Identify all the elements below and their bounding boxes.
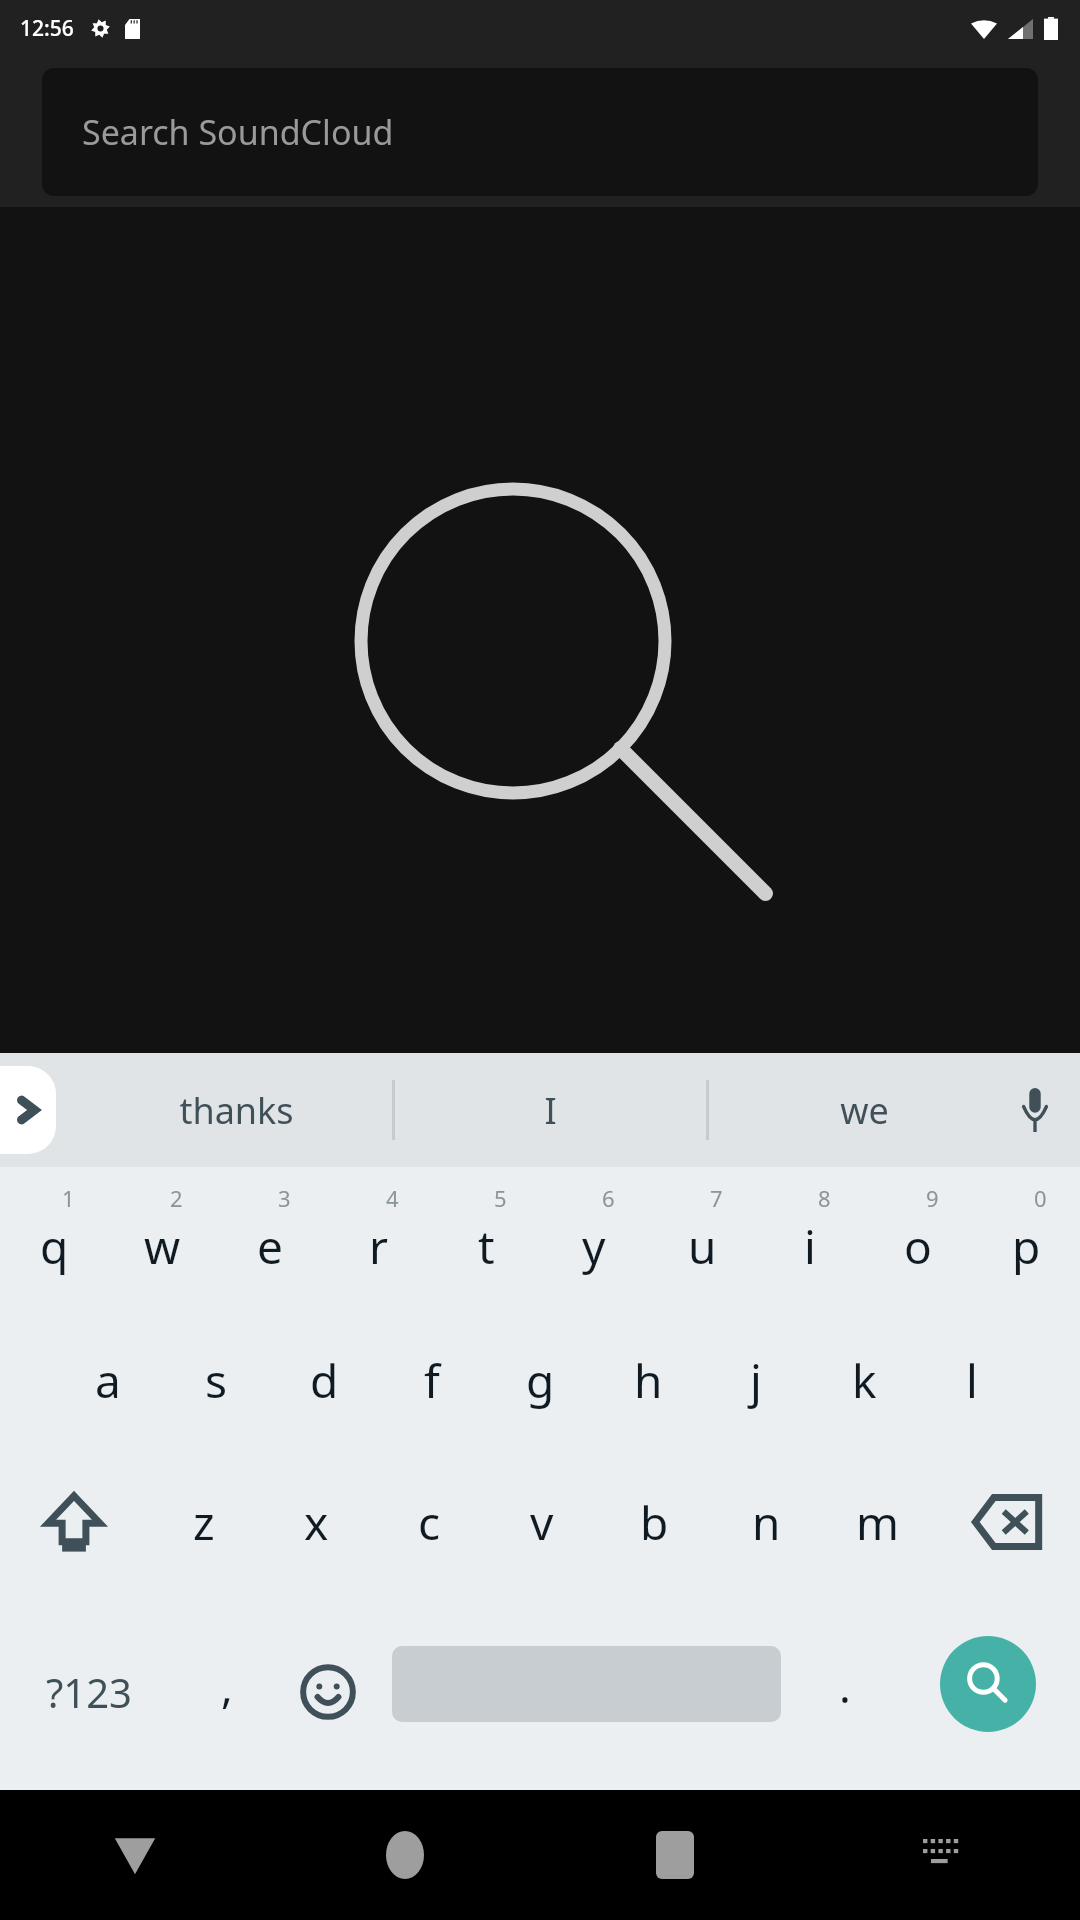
button[interactable]: Recent apps bbox=[540, 1790, 810, 1920]
staticText: w bbox=[144, 1215, 181, 1278]
staticText: Search SoundCloud bbox=[82, 109, 394, 155]
staticText: p bbox=[1012, 1215, 1041, 1278]
button[interactable]: Backspace bbox=[934, 1451, 1080, 1593]
staticText: k bbox=[852, 1349, 877, 1412]
button[interactable]: Expand toolbar bbox=[0, 1066, 56, 1154]
button[interactable]: 8 bbox=[756, 1167, 864, 1309]
button[interactable]: z bbox=[147, 1451, 260, 1593]
button[interactable]: 3 bbox=[216, 1167, 324, 1309]
button[interactable]: I bbox=[395, 1053, 706, 1167]
button[interactable]: , bbox=[178, 1593, 276, 1790]
staticText: a bbox=[95, 1349, 121, 1412]
staticText: r bbox=[369, 1215, 388, 1278]
button[interactable]: Search bbox=[896, 1593, 1080, 1790]
staticText: I bbox=[544, 1086, 557, 1135]
staticText: ?123 bbox=[46, 1665, 132, 1719]
button[interactable]: . bbox=[793, 1593, 896, 1790]
staticText: o bbox=[904, 1215, 932, 1278]
staticText: g bbox=[526, 1349, 555, 1412]
staticText: 2 bbox=[170, 1183, 183, 1213]
staticText: 3 bbox=[278, 1183, 291, 1213]
staticText: we bbox=[840, 1086, 889, 1135]
button[interactable]: Space bbox=[379, 1593, 793, 1790]
staticText: v bbox=[530, 1491, 554, 1554]
staticText: x bbox=[304, 1491, 329, 1554]
staticText: 7 bbox=[710, 1183, 723, 1213]
staticText: 5 bbox=[494, 1183, 507, 1213]
button[interactable]: Home bbox=[270, 1790, 540, 1920]
button[interactable]: Shift bbox=[0, 1451, 147, 1593]
staticText: n bbox=[752, 1491, 781, 1554]
staticText: j bbox=[750, 1349, 762, 1412]
staticText: u bbox=[688, 1215, 717, 1278]
staticText: 6 bbox=[602, 1183, 615, 1213]
staticText: c bbox=[418, 1491, 441, 1554]
button[interactable]: 1 bbox=[0, 1167, 108, 1309]
button[interactable]: a bbox=[54, 1309, 162, 1451]
button[interactable]: 9 bbox=[864, 1167, 972, 1309]
staticText: t bbox=[478, 1215, 495, 1278]
button[interactable]: 5 bbox=[432, 1167, 540, 1309]
staticText: f bbox=[424, 1349, 440, 1412]
staticText: 12:56 bbox=[20, 14, 74, 43]
button[interactable]: h bbox=[594, 1309, 702, 1451]
button[interactable]: n bbox=[710, 1451, 822, 1593]
staticText: l bbox=[966, 1349, 978, 1412]
staticText: z bbox=[193, 1491, 215, 1554]
staticText: i bbox=[804, 1215, 816, 1278]
button[interactable]: we bbox=[709, 1053, 1020, 1167]
button[interactable]: 6 bbox=[540, 1167, 648, 1309]
button[interactable]: f bbox=[378, 1309, 486, 1451]
staticText: m bbox=[856, 1491, 900, 1554]
button[interactable]: j bbox=[702, 1309, 810, 1451]
button[interactable]: m bbox=[822, 1451, 934, 1593]
button[interactable]: d bbox=[270, 1309, 378, 1451]
staticText: q bbox=[40, 1215, 69, 1278]
button[interactable]: c bbox=[373, 1451, 486, 1593]
staticText: h bbox=[634, 1349, 663, 1412]
button[interactable]: Search SoundCloud bbox=[42, 68, 1038, 196]
staticText: d bbox=[310, 1349, 339, 1412]
button[interactable]: thanks bbox=[80, 1053, 392, 1167]
staticText: 8 bbox=[818, 1183, 831, 1213]
button[interactable]: g bbox=[486, 1309, 594, 1451]
staticText: y bbox=[582, 1215, 606, 1278]
button[interactable]: Switch keyboard bbox=[810, 1790, 1080, 1920]
button[interactable]: Back bbox=[0, 1790, 270, 1920]
button[interactable]: x bbox=[260, 1451, 373, 1593]
staticText: 1 bbox=[62, 1183, 75, 1213]
button[interactable]: s bbox=[162, 1309, 270, 1451]
button[interactable]: 0 bbox=[972, 1167, 1080, 1309]
button[interactable]: Voice input bbox=[990, 1065, 1080, 1155]
button[interactable]: Emoji bbox=[276, 1593, 379, 1790]
staticText: thanks bbox=[179, 1086, 294, 1135]
staticText: e bbox=[257, 1215, 283, 1278]
button[interactable]: 7 bbox=[648, 1167, 756, 1309]
staticText: . bbox=[839, 1656, 851, 1716]
staticText: s bbox=[205, 1349, 228, 1412]
button[interactable]: b bbox=[598, 1451, 710, 1593]
staticText: 4 bbox=[386, 1183, 399, 1213]
button[interactable]: 2 bbox=[108, 1167, 216, 1309]
staticText: 0 bbox=[1034, 1183, 1047, 1213]
button[interactable]: 4 bbox=[324, 1167, 432, 1309]
button[interactable]: v bbox=[486, 1451, 598, 1593]
button[interactable]: ?123 bbox=[0, 1593, 178, 1790]
staticText: , bbox=[221, 1656, 233, 1716]
button[interactable]: l bbox=[918, 1309, 1026, 1451]
button[interactable]: k bbox=[810, 1309, 918, 1451]
staticText: 9 bbox=[926, 1183, 939, 1213]
staticText: b bbox=[640, 1491, 669, 1554]
